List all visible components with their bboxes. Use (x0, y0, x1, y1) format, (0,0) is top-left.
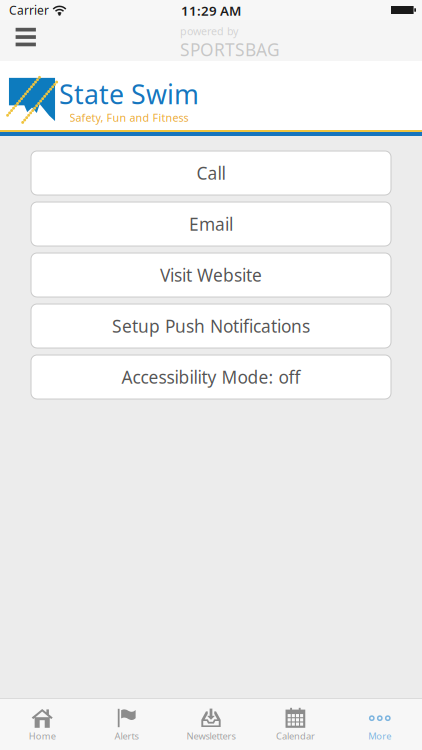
button[interactable]: Home (0, 699, 84, 750)
button[interactable]: Call (31, 151, 391, 195)
button[interactable]: Newsletters (169, 699, 253, 750)
button[interactable]: Setup Push Notifications (31, 304, 391, 348)
staticText: Email (189, 212, 233, 235)
staticText: Call (196, 161, 225, 184)
staticText: powered by (180, 24, 238, 38)
button[interactable]: Accessibility Mode: off (31, 355, 391, 399)
staticText: Home (29, 730, 56, 742)
button[interactable]: Visit Website (31, 253, 391, 297)
button[interactable]: Calendar (253, 699, 338, 750)
button[interactable]: More (338, 699, 422, 750)
staticText: Accessibility Mode: off (121, 365, 300, 388)
staticText: 11:29 AM (181, 2, 241, 19)
staticText: Calendar (276, 730, 315, 742)
staticText: Setup Push Notifications (112, 314, 310, 337)
staticText: Newsletters (186, 730, 235, 742)
staticText: Alerts (115, 730, 139, 742)
button[interactable]: Email (31, 202, 391, 246)
button[interactable]: Alerts (84, 699, 169, 750)
staticText: Visit Website (160, 263, 262, 286)
staticText: State Swim (59, 76, 199, 112)
staticText: More (368, 730, 391, 742)
button[interactable]: Menu (0, 20, 50, 61)
staticText: Safety, Fun and Fitness (69, 111, 188, 125)
staticText: SPORTSBAG (180, 38, 280, 61)
staticText: Carrier (9, 2, 49, 18)
